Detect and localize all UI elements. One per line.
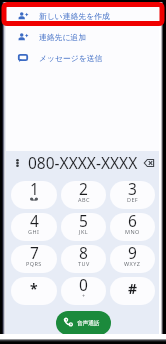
button[interactable]: Backspace	[142, 156, 156, 170]
staticText: #	[128, 279, 138, 298]
button[interactable]: 5	[61, 213, 106, 241]
staticText: DEF	[127, 196, 139, 203]
staticText: 5	[79, 213, 88, 231]
staticText: ABC	[78, 196, 90, 203]
staticText: 8	[79, 245, 88, 263]
button[interactable]: 0	[61, 277, 106, 305]
staticText: GHI	[28, 228, 40, 235]
button[interactable]: *	[11, 277, 57, 305]
staticText: 0	[79, 277, 88, 295]
staticText: 連絡先に追加	[39, 32, 86, 42]
button[interactable]: 連絡先に追加	[5, 26, 159, 47]
staticText: 音声通話	[77, 320, 100, 327]
staticText: *	[30, 279, 38, 298]
button[interactable]: 7	[11, 245, 57, 273]
staticText: 2	[79, 181, 88, 199]
staticText: WXYZ	[124, 260, 141, 267]
staticText: TUV	[78, 260, 90, 267]
staticText: 3	[128, 181, 137, 199]
button[interactable]: 音声通話	[56, 311, 111, 335]
staticText: MNO	[125, 228, 140, 235]
button[interactable]: 9	[110, 245, 155, 273]
staticText: メッセージを送信	[39, 53, 103, 63]
button[interactable]: 8	[61, 245, 106, 273]
button[interactable]: 1	[11, 181, 57, 209]
staticText: 080-XXXX-XXXX	[28, 152, 138, 173]
button[interactable]: 3	[110, 181, 155, 209]
button[interactable]: メッセージを送信	[5, 47, 159, 68]
staticText: 1	[30, 181, 39, 199]
staticText: 9	[128, 245, 137, 263]
button[interactable]: More options	[10, 156, 24, 170]
button[interactable]: #	[110, 277, 155, 305]
staticText: 7	[30, 245, 39, 263]
button[interactable]: 2	[61, 181, 106, 209]
staticText: 新しい連絡先を作成	[39, 11, 110, 21]
button[interactable]: 4	[11, 213, 57, 241]
button[interactable]: 6	[110, 213, 155, 241]
staticText: JKL	[79, 228, 88, 235]
staticText: PQRS	[26, 260, 42, 267]
button[interactable]: 新しい連絡先を作成	[5, 5, 159, 26]
staticText: +	[82, 292, 86, 299]
staticText: 6	[128, 213, 137, 231]
staticText: 4	[30, 213, 39, 231]
